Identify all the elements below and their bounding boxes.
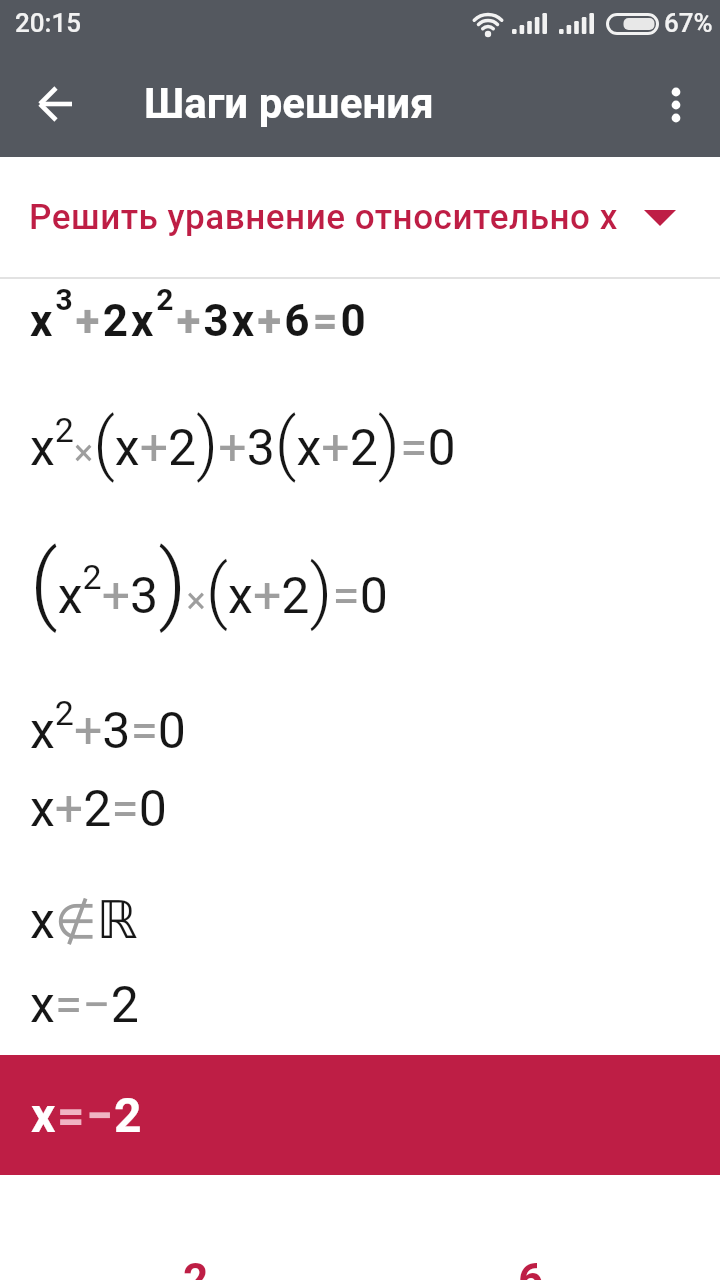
- staticText: 67%: [664, 8, 713, 38]
- staticText: x+2=0: [30, 780, 167, 839]
- staticText: x3+2x2+3x+6=0: [30, 282, 369, 346]
- staticText: 20:15: [15, 8, 82, 38]
- staticText: x=−2: [30, 976, 139, 1035]
- button[interactable]: x=−2: [0, 1055, 720, 1175]
- button[interactable]: [648, 76, 704, 132]
- staticText: 2: [183, 1254, 209, 1280]
- button[interactable]: Решить уравнение относительно x: [0, 157, 720, 277]
- staticText: x=−2: [31, 1087, 144, 1143]
- staticText: 6: [518, 1254, 544, 1280]
- staticText: x2×(x+2)+3(x+2)=0: [30, 404, 456, 484]
- staticText: x∉ℝ: [30, 890, 138, 951]
- staticText: Шаги решения: [144, 79, 434, 128]
- button[interactable]: [24, 72, 88, 136]
- staticText: Решить уравнение относительно x: [29, 197, 618, 238]
- staticText: x2+3=0: [30, 693, 186, 760]
- staticText: (x2+3)×(x+2)=0: [30, 532, 388, 634]
